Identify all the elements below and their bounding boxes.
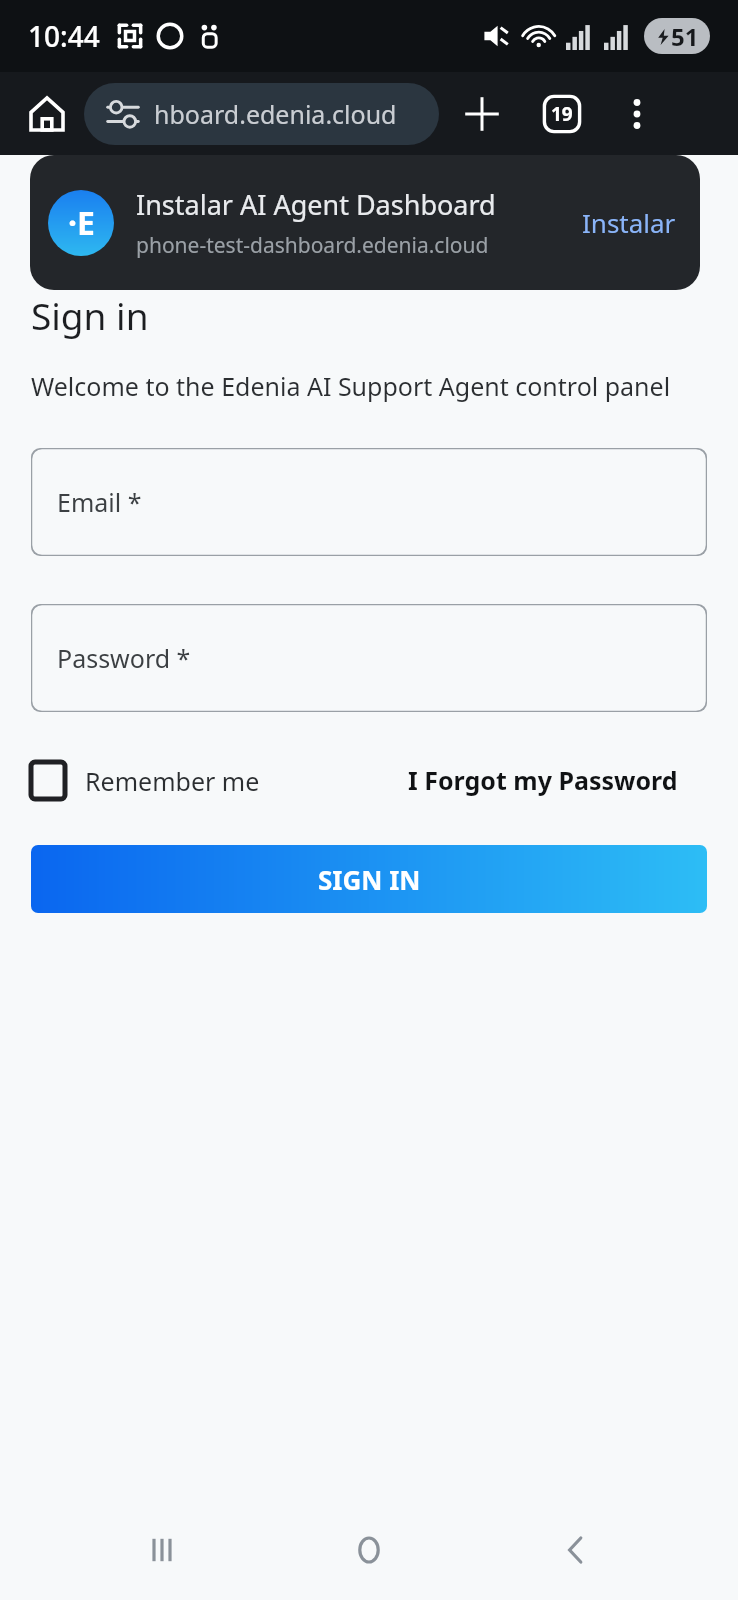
staticText: Email * (57, 485, 142, 519)
button[interactable]: Recent apps (117, 1505, 207, 1595)
button[interactable]: More options (611, 88, 663, 140)
button[interactable]: ·E (30, 155, 700, 290)
button[interactable]: Instalar (576, 205, 682, 240)
staticText: phone-test-dashboard.edenia.cloud (136, 231, 489, 260)
staticText: 19 (551, 101, 573, 127)
staticText: Instalar AI Agent Dashboard (136, 186, 496, 223)
staticText: I Forgot my Password (408, 763, 678, 797)
button[interactable]: Home (324, 1505, 414, 1595)
staticText: Welcome to the Edenia AI Support Agent c… (31, 369, 671, 403)
staticText: Sign in (31, 290, 149, 340)
staticText: Password * (57, 641, 191, 675)
button[interactable]: Home (18, 85, 76, 143)
button[interactable]: Tabs, 19 open (533, 85, 591, 143)
button[interactable]: Back (531, 1505, 621, 1595)
button[interactable]: New tab (453, 85, 511, 143)
button[interactable]: hboard.edenia.cloud (84, 83, 439, 145)
staticText: Instalar (582, 205, 676, 240)
button[interactable]: I Forgot my Password (408, 763, 678, 797)
staticText: 10:44 (28, 17, 100, 55)
button[interactable]: SIGN IN (31, 845, 707, 913)
staticText: SIGN IN (318, 862, 421, 897)
button[interactable]: Email * (31, 448, 707, 556)
button[interactable]: Remember me (31, 762, 266, 799)
staticText: hboard.edenia.cloud (154, 97, 397, 131)
staticText: Remember me (85, 764, 260, 798)
staticText: 51 (671, 20, 699, 53)
staticText: ·E (68, 201, 95, 245)
button[interactable]: Password * (31, 604, 707, 712)
